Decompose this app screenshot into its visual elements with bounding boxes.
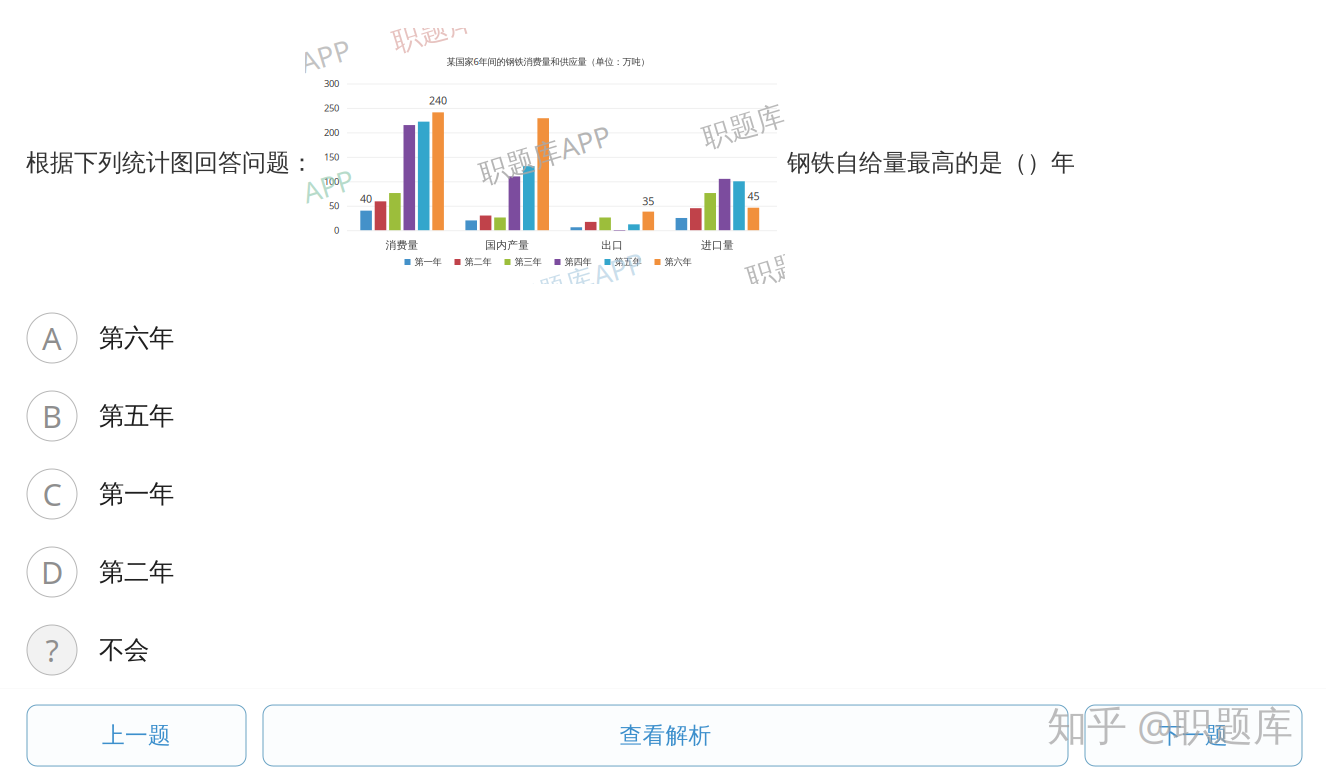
- button[interactable]: B. 第五年: [0, 377, 1326, 455]
- staticText: 250: [324, 102, 339, 114]
- staticText: 不会: [99, 634, 149, 665]
- staticText: 职题库APP: [700, 99, 836, 137]
- staticText: 职题库APP: [744, 239, 880, 277]
- staticText: A: [42, 318, 62, 358]
- staticText: 根据下列统计图回答问题：: [26, 148, 314, 177]
- staticText: 第六年: [99, 322, 174, 353]
- staticText: 知乎 @职题库: [1047, 698, 1293, 751]
- staticText: 进口量: [701, 239, 734, 252]
- staticText: 第一年: [414, 256, 441, 268]
- button[interactable]: C. 第一年: [0, 455, 1326, 533]
- button[interactable]: 上一题: [27, 705, 246, 766]
- staticText: 第一年: [99, 478, 174, 509]
- button[interactable]: 查看解析: [263, 705, 1068, 766]
- button[interactable]: D. 第二年: [0, 533, 1326, 611]
- staticText: 消费量: [386, 239, 419, 252]
- staticText: 钢铁自给量最高的是（）年: [787, 148, 1075, 177]
- staticText: 第五年: [614, 256, 641, 268]
- staticText: 职题库APP: [510, 262, 646, 300]
- staticText: ?: [45, 630, 58, 670]
- staticText: C: [42, 474, 61, 514]
- staticText: B: [42, 396, 62, 436]
- button[interactable]: A. 第六年: [0, 299, 1326, 377]
- staticText: 第二年: [99, 556, 174, 587]
- staticText: 下一题: [1159, 722, 1228, 749]
- staticText: 第三年: [514, 256, 541, 268]
- staticText: 上一题: [102, 722, 171, 749]
- staticText: 40: [360, 192, 372, 206]
- staticText: 240: [429, 93, 447, 107]
- staticText: 35: [642, 194, 654, 208]
- staticText: 第五年: [99, 400, 174, 431]
- staticText: 职题库APP: [477, 135, 613, 173]
- staticText: 200: [324, 126, 339, 139]
- staticText: 0: [334, 224, 339, 236]
- staticText: 45: [747, 189, 759, 203]
- staticText: 第六年: [664, 256, 691, 268]
- staticText: 出口: [601, 239, 623, 252]
- staticText: 第二年: [464, 256, 491, 268]
- button[interactable]: 不会: [0, 611, 1326, 689]
- staticText: D: [41, 552, 63, 592]
- staticText: 职题库APP: [390, 3, 526, 41]
- staticText: 国内产量: [485, 239, 529, 252]
- staticText: 第四年: [564, 256, 591, 268]
- staticText: 100: [324, 175, 339, 187]
- staticText: 150: [324, 151, 339, 163]
- staticText: 查看解析: [619, 722, 711, 749]
- staticText: 300: [324, 77, 339, 90]
- button[interactable]: 下一题: [1085, 705, 1302, 766]
- staticText: 职题库APP: [220, 179, 356, 217]
- staticText: 某国家6年间的钢铁消费量和供应量（单位：万吨）: [446, 55, 649, 68]
- staticText: 职题库APP: [217, 49, 353, 87]
- staticText: 50: [329, 200, 339, 212]
